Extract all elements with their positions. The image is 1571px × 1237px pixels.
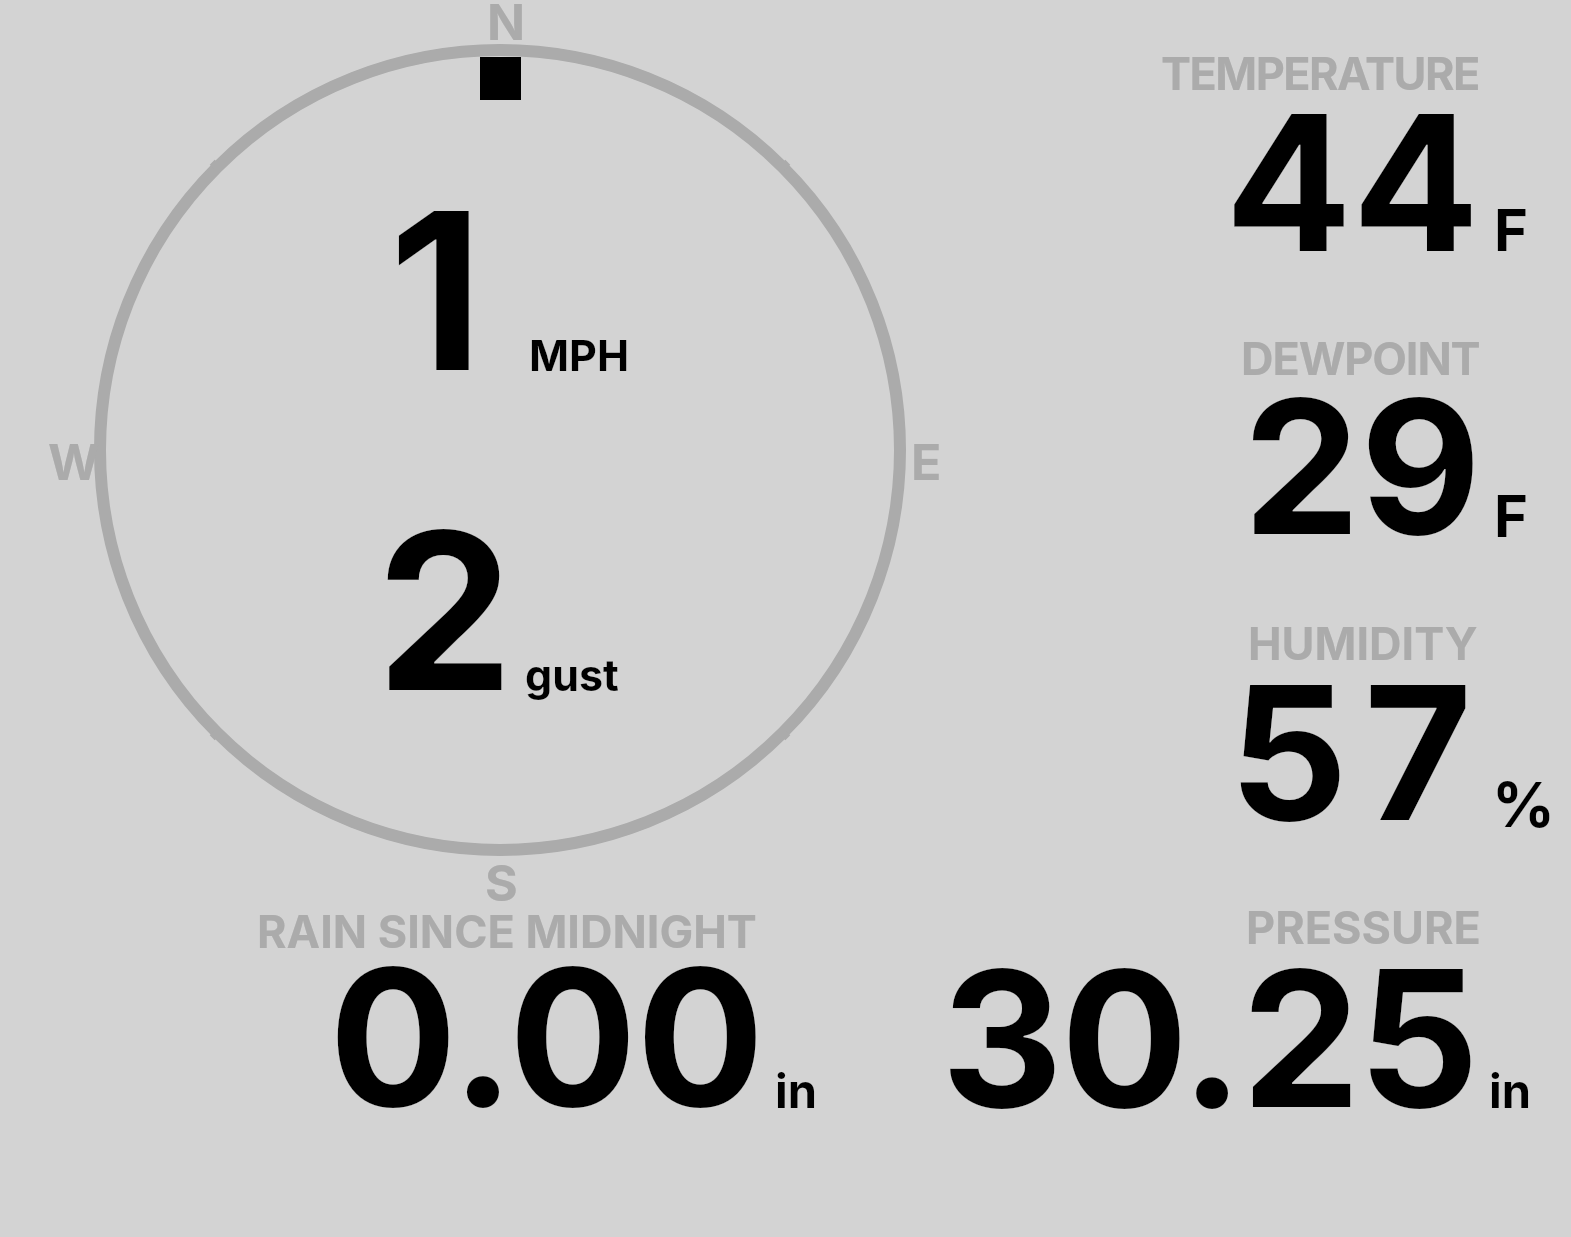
- staticText: 57: [1229, 640, 1489, 865]
- staticText: N: [487, 0, 526, 52]
- staticText: W: [48, 432, 100, 492]
- staticText: in: [775, 1062, 817, 1119]
- staticText: %: [1492, 767, 1561, 842]
- staticText: RAIN SINCE MIDNIGHT: [257, 904, 757, 958]
- staticText: MPH: [529, 329, 630, 381]
- staticText: HUMIDITY: [1248, 616, 1478, 670]
- staticText: PRESSURE: [1246, 900, 1481, 954]
- button[interactable]: Rain since midnight 0.00 inches: [160, 905, 860, 1135]
- staticText: F: [1494, 481, 1529, 551]
- button[interactable]: Wind speed 1 MPH, gusting 2, compass: [0, 0, 960, 910]
- staticText: S: [485, 853, 518, 913]
- button[interactable]: Humidity 57 percent: [1000, 586, 1571, 846]
- staticText: TEMPERATURE: [1161, 46, 1479, 100]
- button[interactable]: Dew point 29 degrees Fahrenheit: [1000, 300, 1571, 560]
- button[interactable]: Pressure 30.25 inches: [880, 905, 1571, 1135]
- staticText: 29: [1243, 354, 1481, 579]
- staticText: 0.00: [329, 922, 765, 1152]
- staticText: 1: [389, 159, 483, 423]
- staticText: E: [911, 432, 942, 492]
- staticText: 2: [376, 479, 514, 743]
- staticText: 30.25: [941, 924, 1477, 1153]
- staticText: gust: [525, 649, 619, 701]
- staticText: 44: [1225, 69, 1480, 296]
- staticText: F: [1494, 195, 1529, 265]
- staticText: in: [1489, 1062, 1531, 1119]
- button[interactable]: Temperature 44 degrees Fahrenheit: [1000, 20, 1571, 280]
- staticText: DEWPOINT: [1241, 331, 1480, 385]
